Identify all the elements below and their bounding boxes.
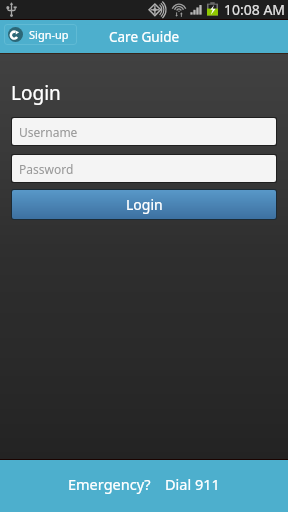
button[interactable]: Password — [12, 155, 276, 182]
staticText: Username — [19, 124, 78, 140]
staticText: Sign-up — [29, 27, 69, 42]
staticText: Password — [19, 161, 74, 177]
button[interactable]: Username — [12, 118, 276, 145]
staticText: 10:08 AM — [224, 0, 286, 19]
button[interactable]: Sign-up — [4, 24, 77, 45]
staticText: Login — [126, 195, 163, 214]
staticText: Dial 911 — [165, 474, 220, 494]
staticText: Care Guide — [109, 28, 180, 46]
button[interactable]: Login — [12, 190, 276, 219]
staticText: Emergency? — [68, 474, 151, 494]
staticText: Login — [11, 80, 61, 106]
button[interactable]: Emergency? — [0, 460, 288, 512]
